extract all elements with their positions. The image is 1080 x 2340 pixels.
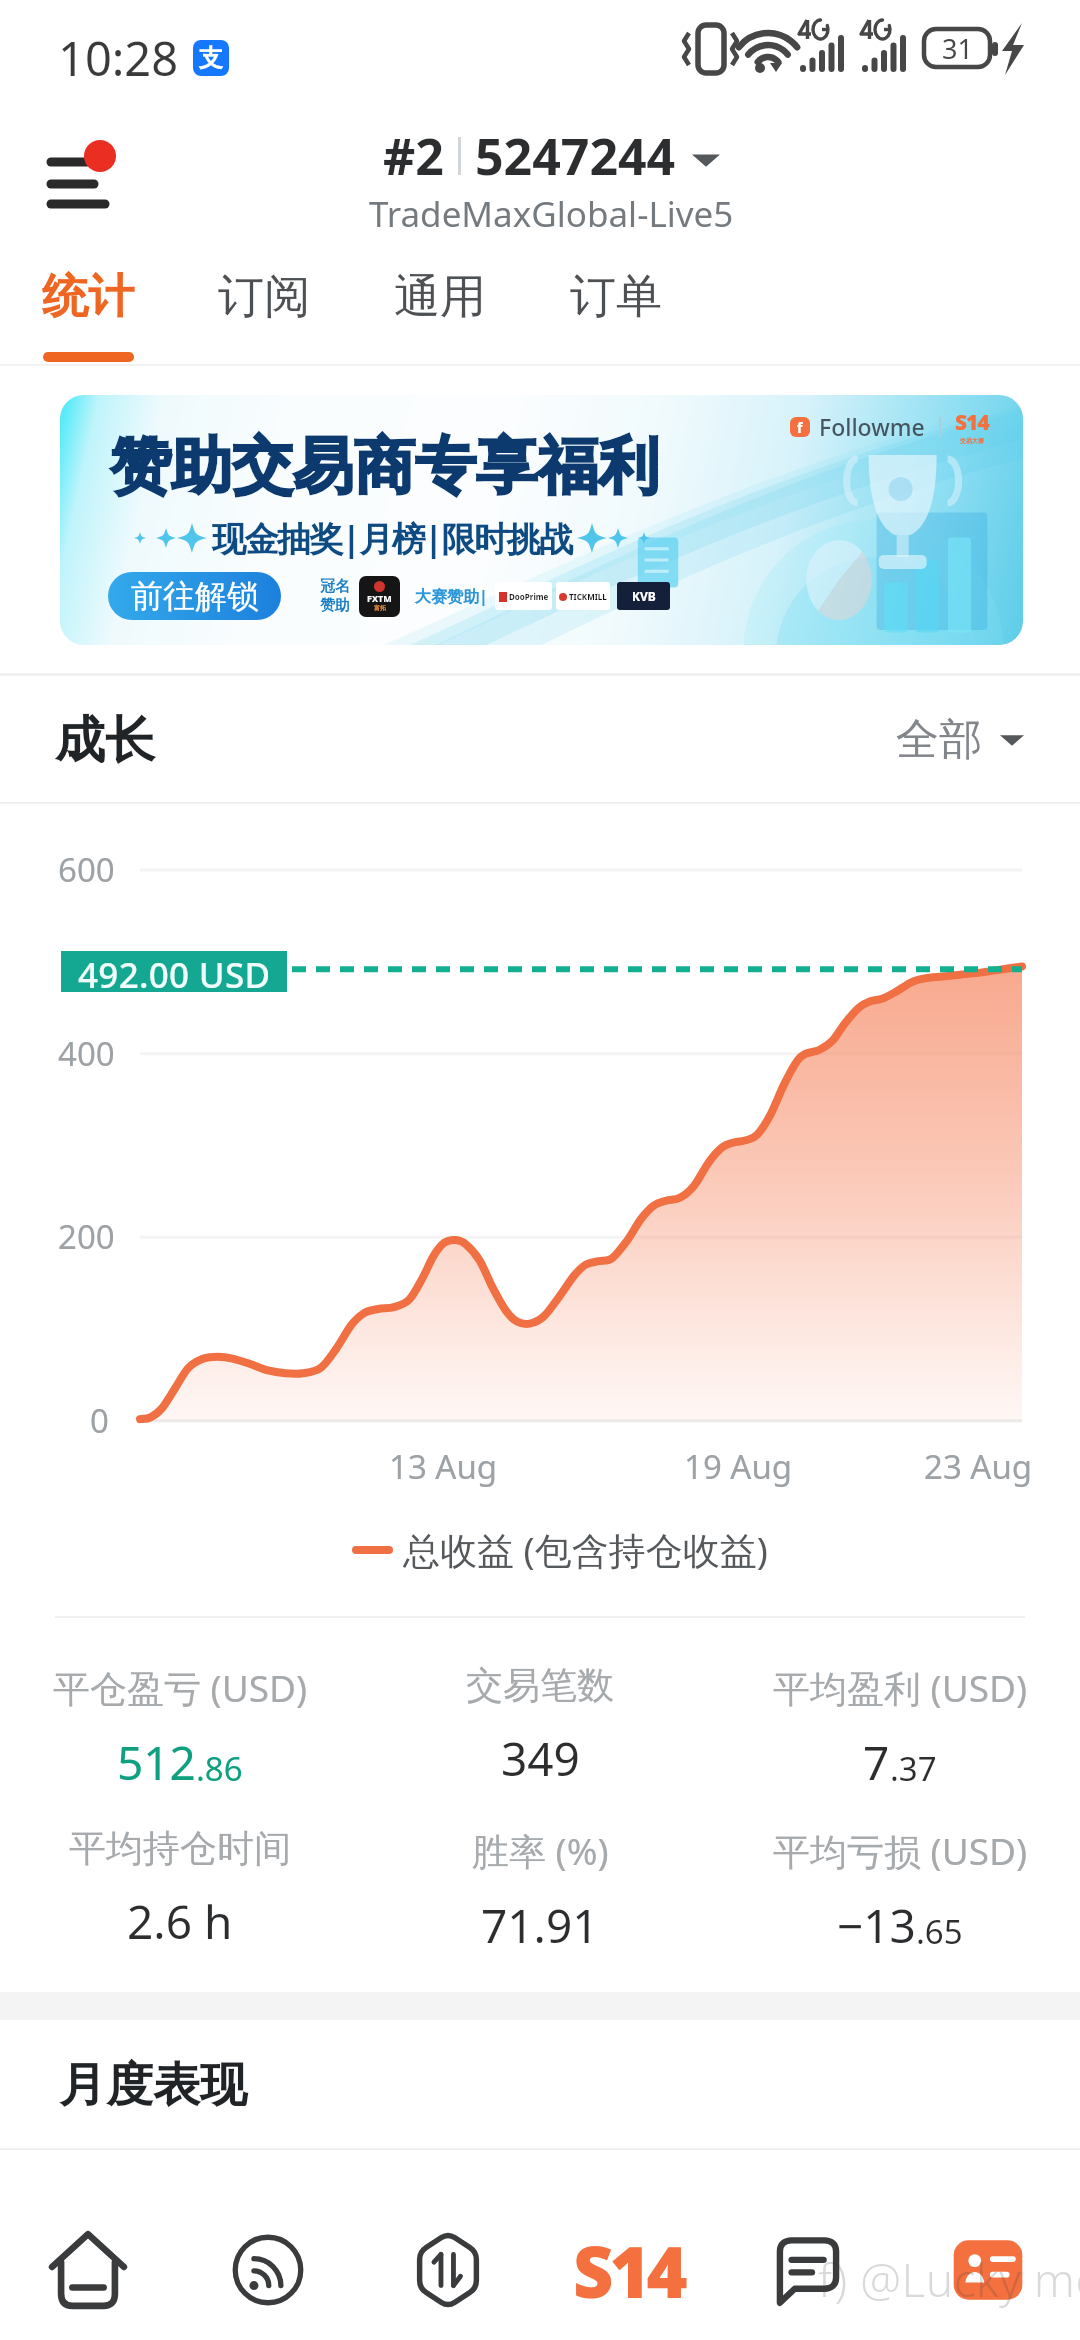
staticText: 平均亏损 (USD) — [773, 1825, 1028, 1876]
button[interactable]: 订阅 — [176, 268, 352, 364]
staticText: .65 — [916, 1909, 963, 1954]
staticText: 大赛赞助| — [415, 585, 488, 607]
staticText: 订阅 — [218, 268, 310, 326]
button[interactable]: Home — [3, 2185, 173, 2340]
staticText: FXTM — [367, 592, 392, 604]
staticText: 19 Aug — [684, 1444, 793, 1489]
staticText: −13 — [837, 1894, 916, 1957]
button[interactable]: 统计 — [0, 268, 176, 364]
staticText: 前往解锁 — [131, 576, 259, 616]
staticText: 赞助交易商专享福利 — [110, 428, 659, 505]
staticText: 平均盈利 (USD) — [773, 1662, 1028, 1713]
button[interactable]: Trade — [363, 2185, 533, 2340]
staticText: f — [797, 418, 803, 437]
staticText: 冠名 — [320, 577, 350, 596]
staticText: TICKMILL — [569, 591, 607, 602]
staticText: 月度表现 — [59, 2056, 247, 2115]
staticText: 全部 — [896, 713, 982, 767]
staticText: 10:28 — [58, 26, 179, 90]
staticText: 349 — [501, 1727, 580, 1790]
staticText: 交易大赛 — [960, 437, 984, 445]
staticText: .86 — [196, 1746, 243, 1791]
staticText: 胜率 (%) — [472, 1825, 609, 1876]
staticText: 成长 — [55, 709, 155, 772]
staticText: 200 — [58, 1214, 115, 1259]
button[interactable]: 订单 — [528, 268, 704, 364]
staticText: 赞助 — [320, 596, 350, 615]
staticText: 492.00 USD — [78, 951, 271, 992]
staticText: 5247244 — [475, 122, 676, 190]
staticText: 13 Aug — [389, 1444, 498, 1489]
staticText: 总收益 (包含持仓收益) — [403, 1524, 768, 1575]
staticText: #2 — [383, 122, 444, 190]
staticText: 支 — [199, 43, 223, 73]
staticText: f) @Lucky me — [818, 2248, 1080, 2311]
staticText: KVB — [632, 588, 656, 604]
staticText: DooPrime — [509, 591, 549, 602]
button[interactable]: Menu — [32, 124, 142, 224]
staticText: 通用 — [394, 268, 486, 326]
staticText: 23 Aug — [924, 1444, 1033, 1489]
staticText: S14 — [955, 408, 989, 437]
staticText: 平均持仓时间 — [69, 1825, 291, 1872]
staticText: 31 — [942, 30, 973, 67]
staticText: 600 — [58, 847, 115, 892]
button[interactable]: Profile — [903, 2185, 1073, 2340]
staticText: 2.6 h — [127, 1890, 233, 1953]
staticText: 统计 — [42, 268, 134, 326]
button[interactable]: 通用 — [352, 268, 528, 364]
staticText: 交易笔数 — [466, 1662, 614, 1709]
button[interactable]: 赞助交易商专享福利 banner — [60, 395, 1023, 645]
staticText: 订单 — [570, 268, 662, 326]
staticText: .37 — [890, 1746, 937, 1791]
staticText: S14 — [573, 2223, 684, 2318]
staticText: 平仓盈亏 (USD) — [53, 1662, 308, 1713]
staticText: 512 — [117, 1731, 196, 1794]
button[interactable]: #2 — [383, 122, 720, 190]
button[interactable]: 前往解锁 — [108, 572, 281, 620]
staticText: 富拓 — [374, 604, 386, 612]
staticText: TradeMaxGlobal-Live5 — [369, 190, 734, 238]
button[interactable]: Feed — [183, 2185, 353, 2340]
staticText: 0 — [90, 1398, 109, 1443]
staticText: 7 — [863, 1731, 890, 1794]
button[interactable]: S14 — [543, 2185, 713, 2340]
staticText: 400 — [58, 1031, 115, 1076]
staticText: Followme — [819, 411, 925, 442]
staticText: 71.91 — [481, 1894, 599, 1957]
button[interactable]: Messages — [723, 2185, 893, 2340]
staticText: 现金抽奖|月榜|限时挑战 — [212, 515, 572, 561]
button[interactable]: 全部 — [896, 713, 1024, 767]
